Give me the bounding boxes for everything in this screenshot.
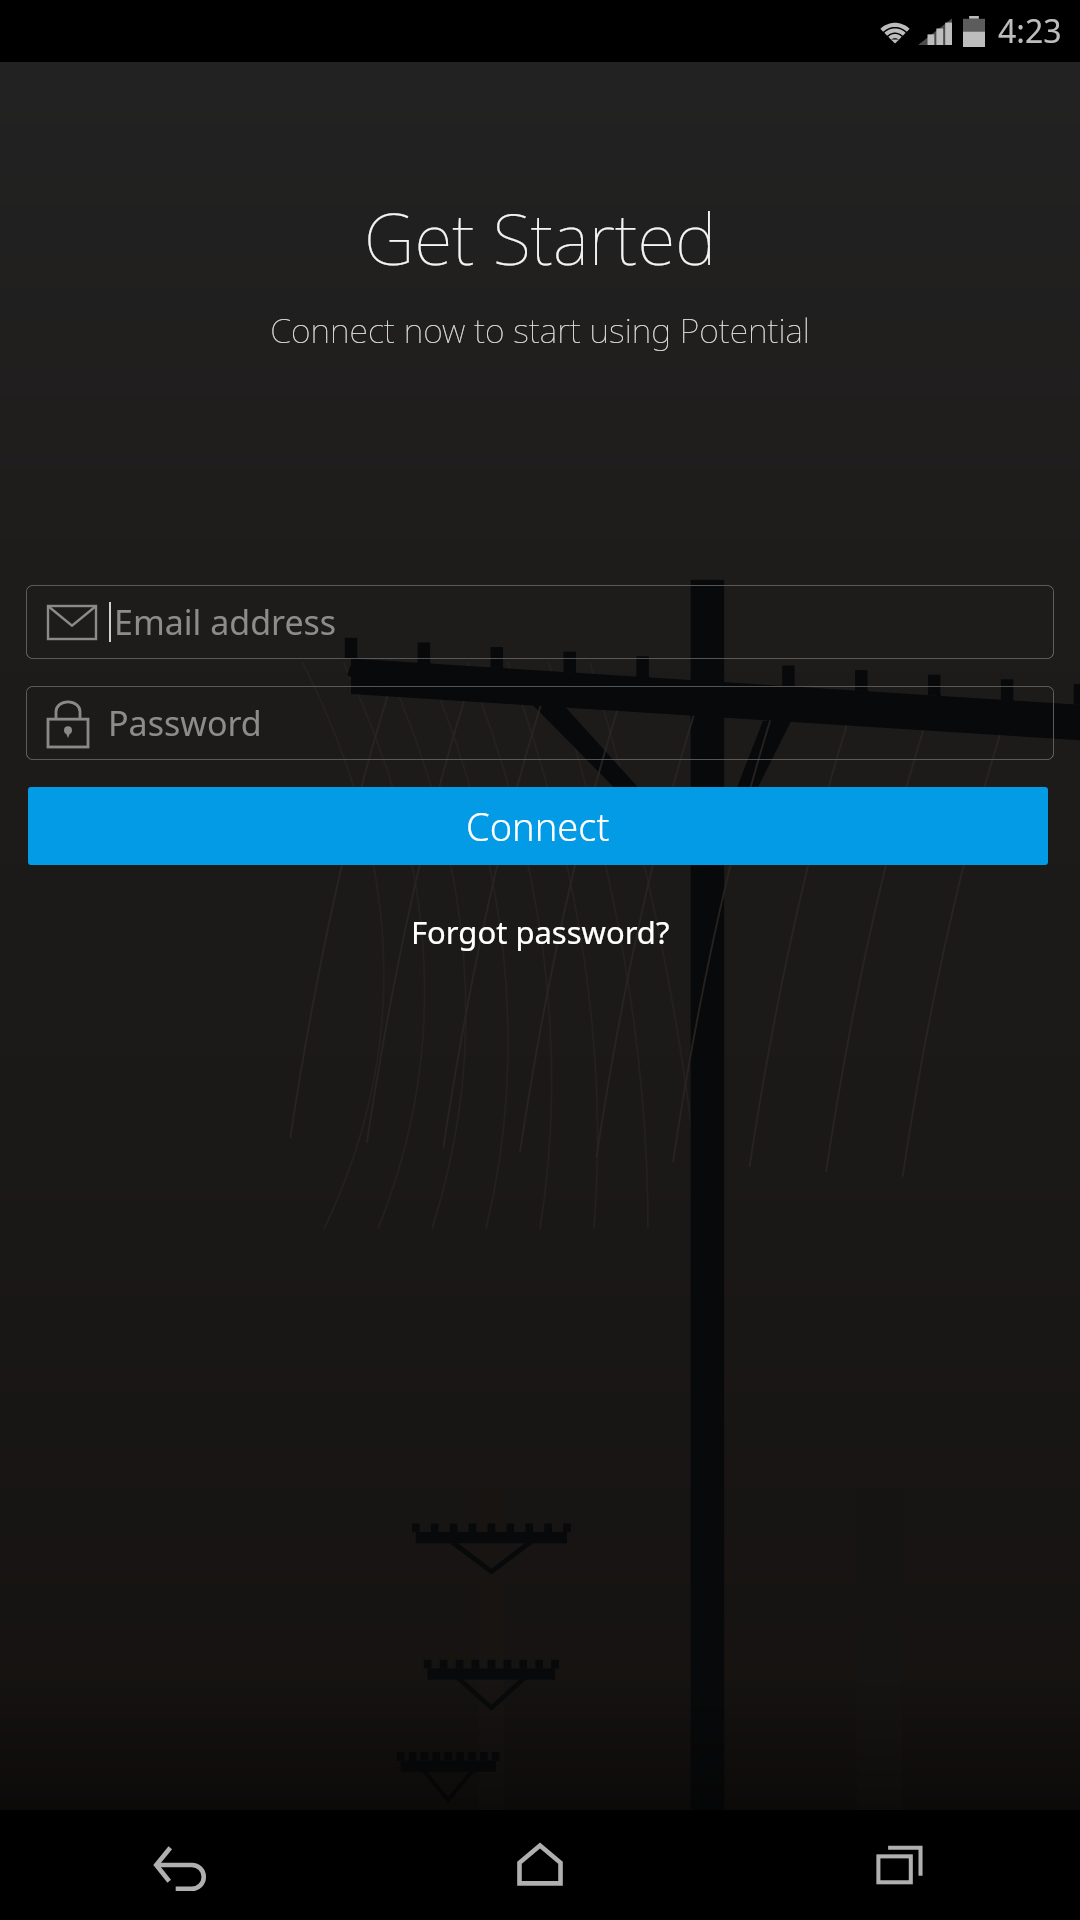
staticText: Connect now to start using Potential [0,307,1080,353]
button[interactable]: Connect [28,787,1048,865]
staticText: Email address [114,599,337,645]
other: Password [48,699,88,747]
button[interactable]: Forgot password? [387,899,694,965]
staticText: Get Started [0,190,1080,285]
button[interactable]: Password [26,686,1054,760]
staticText: Connect [466,800,610,852]
button[interactable]: Recent apps [720,1810,1080,1920]
button[interactable]: Email [26,585,1054,659]
staticText: 4:23 [998,9,1062,53]
other: Email [48,606,96,639]
button[interactable]: Back [0,1810,360,1920]
button[interactable]: Home [360,1810,720,1920]
staticText: Password [108,700,262,746]
staticText: Forgot password? [411,911,670,953]
